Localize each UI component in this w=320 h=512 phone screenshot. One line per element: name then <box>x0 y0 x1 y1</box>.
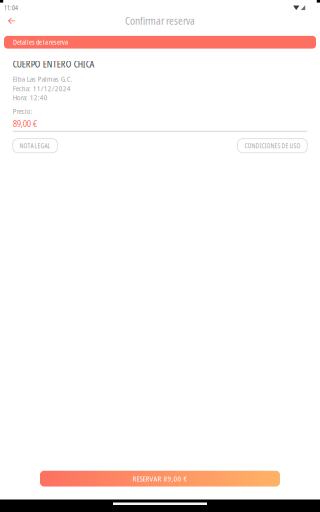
staticText: Hora: 12:40 <box>13 92 48 102</box>
staticText: Fecha: 11/12/2024 <box>13 83 71 93</box>
staticText: Detalles de la reserva <box>13 38 68 47</box>
staticText: NOTA LEGAL <box>20 141 51 150</box>
button[interactable]: NOTA LEGAL <box>13 139 57 153</box>
button[interactable]: CONDICIONES DE USO <box>238 139 307 153</box>
staticText: Precio: <box>13 106 33 116</box>
button[interactable]: RESERVAR 89,00 € <box>40 471 280 487</box>
staticText: 11:04 <box>4 3 18 12</box>
staticText: CONDICIONES DE USO <box>244 141 300 150</box>
staticText: RESERVAR 89,00 € <box>132 473 187 484</box>
staticText: CUERPO ENTERO CHICA <box>13 58 95 70</box>
staticText: Confirmar reserva <box>125 14 195 28</box>
staticText: 89,00 € <box>13 117 37 130</box>
button[interactable]: Atrás <box>1 12 21 30</box>
staticText: Elba Las Palmas G.C. <box>13 74 73 84</box>
